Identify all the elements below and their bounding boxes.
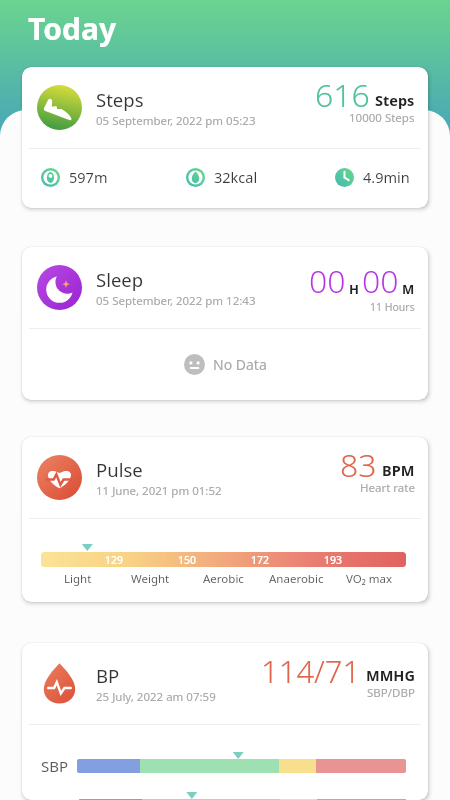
staticText: Pulse (96, 457, 143, 482)
staticText: 05 September, 2022 pm 12:43 (96, 293, 256, 309)
staticText: No Data (213, 355, 267, 374)
button[interactable]: BP (22, 643, 428, 800)
other: 4.9min (335, 168, 354, 187)
staticText: 193 (324, 553, 343, 567)
staticText: 10000 Steps (349, 110, 415, 126)
staticText: 11 June, 2021 pm 01:52 (96, 483, 222, 499)
staticText: SBP (41, 756, 69, 776)
staticText: 05 September, 2022 pm 05:23 (96, 113, 256, 129)
staticText: 129 (105, 553, 124, 567)
button[interactable]: 597m (41, 167, 108, 187)
staticText: Light (64, 571, 92, 587)
staticText: BP (96, 663, 120, 688)
staticText: 150 (178, 553, 197, 567)
staticText: 616 (315, 73, 370, 117)
staticText: 172 (251, 553, 270, 567)
button[interactable]: Pulse (22, 437, 428, 602)
staticText: 00 (309, 259, 346, 303)
staticText: MMHG (366, 665, 415, 685)
staticText: 114/71 (261, 650, 361, 692)
staticText: 00 (362, 259, 399, 303)
staticText: Anaerobic (269, 571, 324, 587)
staticText: Sleep (96, 267, 144, 292)
staticText: 32kcal (214, 167, 258, 187)
staticText: M (402, 280, 415, 298)
staticText: Weight (131, 571, 170, 587)
staticText: Steps (375, 90, 415, 110)
other: 597m (41, 168, 60, 187)
button[interactable]: 32kcal (186, 167, 258, 187)
staticText: Aerobic (203, 571, 244, 587)
staticText: SBP/DBP (367, 685, 415, 701)
staticText: VO₂ max (346, 571, 393, 587)
staticText: BPM (382, 460, 415, 480)
staticText: 11 Hours (370, 300, 415, 314)
staticText: Steps (96, 87, 144, 112)
button[interactable]: 4.9min (335, 167, 410, 187)
button[interactable]: Sleep (22, 247, 428, 400)
staticText: 4.9min (363, 167, 410, 187)
staticText: 597m (69, 167, 108, 187)
other: 32kcal (186, 168, 205, 187)
staticText: 83 (340, 443, 377, 487)
staticText: H (349, 280, 359, 298)
button[interactable]: Steps (22, 67, 428, 208)
staticText: Heart rate (360, 480, 415, 496)
staticText: Today (28, 8, 117, 49)
staticText: 25 July, 2022 am 07:59 (96, 689, 216, 705)
